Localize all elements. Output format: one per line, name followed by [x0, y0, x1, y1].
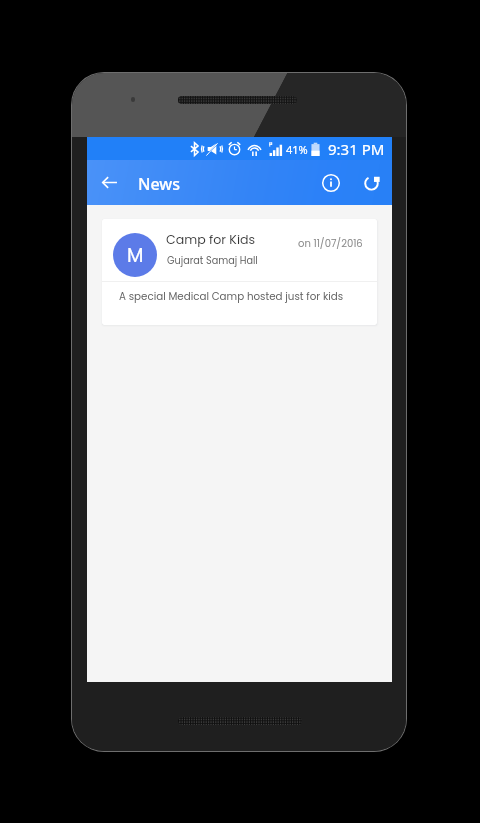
- staticText: Gujarat Samaj Hall: [167, 254, 258, 268]
- button[interactable]: M: [102, 219, 377, 325]
- staticText: on 11/07/2016: [298, 236, 363, 250]
- button[interactable]: Info: [311, 160, 351, 205]
- button[interactable]: Back: [90, 160, 128, 205]
- staticText: Camp for Kids: [166, 231, 256, 249]
- staticText: News: [138, 173, 180, 195]
- staticText: 9:31 PM: [328, 139, 385, 159]
- staticText: M: [127, 242, 144, 269]
- staticText: 41%: [286, 142, 308, 157]
- button[interactable]: Refresh: [352, 160, 392, 205]
- staticText: A special Medical Camp hosted just for k…: [119, 289, 344, 303]
